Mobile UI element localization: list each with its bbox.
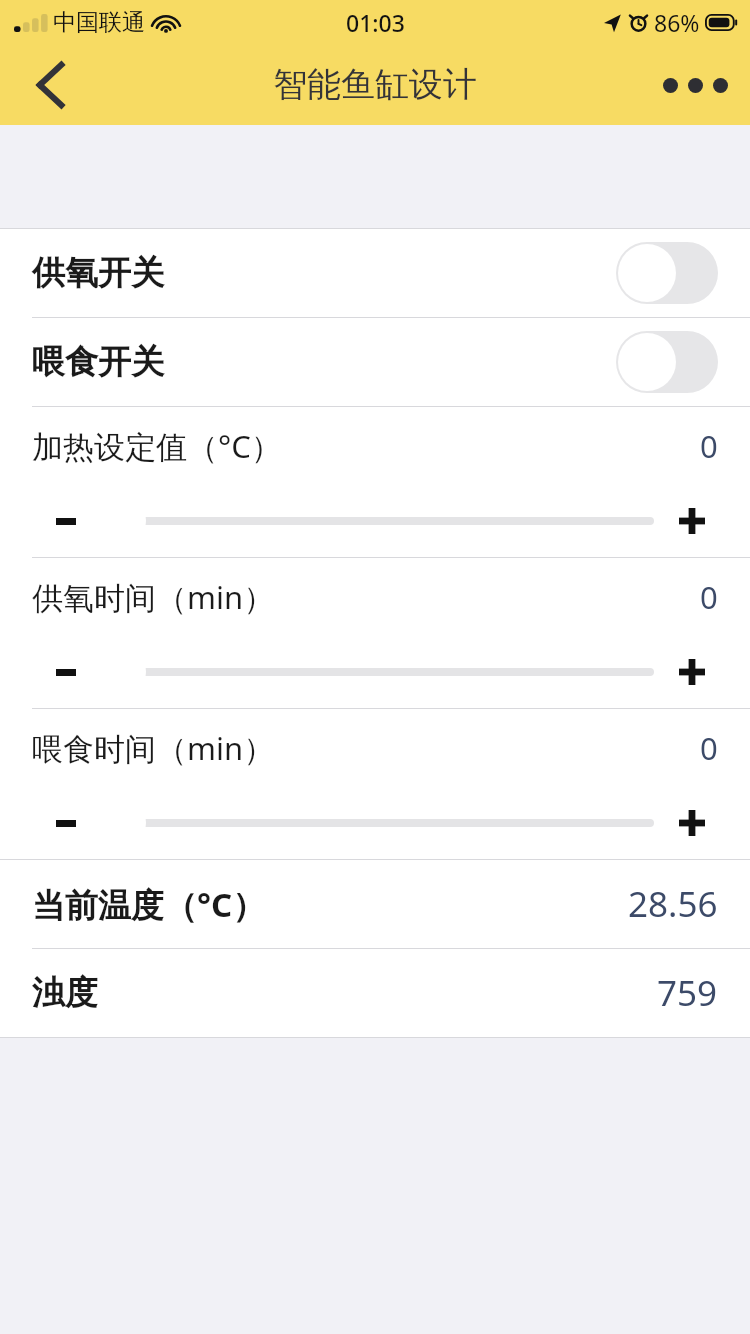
button[interactable]: 供氧时间（min） bbox=[0, 558, 750, 708]
button[interactable]: 供氧开关 bbox=[0, 229, 750, 317]
staticText: 加热设定值（°C） bbox=[32, 425, 700, 467]
staticText: 0 bbox=[700, 425, 718, 467]
staticText: 供氧开关 bbox=[32, 252, 616, 294]
staticText: 01:03 bbox=[346, 7, 405, 38]
staticText: 喂食开关 bbox=[32, 341, 616, 383]
button[interactable]: Decrease 喂食时间（min） bbox=[48, 805, 84, 841]
button[interactable]: Decrease 供氧时间（min） bbox=[48, 654, 84, 690]
button[interactable]: 喂食开关 bbox=[0, 318, 750, 406]
other: 供氧开关 bbox=[616, 242, 718, 304]
staticText: 当前温度（°C） bbox=[32, 882, 628, 927]
staticText: 喂食时间（min） bbox=[32, 727, 700, 769]
button[interactable]: 浊度 bbox=[0, 949, 750, 1037]
button[interactable]: Increase 加热设定值（°C） bbox=[672, 501, 712, 541]
button[interactable]: 喂食时间（min） bbox=[0, 709, 750, 859]
button[interactable]: 当前温度（°C） bbox=[0, 860, 750, 948]
button[interactable]: Increase 喂食时间（min） bbox=[672, 803, 712, 843]
button[interactable]: More options bbox=[644, 57, 728, 113]
other: 喂食开关 bbox=[616, 331, 718, 393]
button[interactable]: Decrease 加热设定值（°C） bbox=[48, 503, 84, 539]
staticText: 86% bbox=[654, 7, 700, 38]
staticText: 0 bbox=[700, 727, 718, 769]
staticText: 28.56 bbox=[628, 880, 718, 928]
staticText: 智能鱼缸设计 bbox=[273, 63, 477, 106]
staticText: 中国联通 bbox=[53, 8, 145, 37]
staticText: 供氧时间（min） bbox=[32, 576, 700, 618]
button[interactable]: 加热设定值（°C） bbox=[0, 407, 750, 557]
staticText: 759 bbox=[657, 969, 718, 1017]
button[interactable]: Increase 供氧时间（min） bbox=[672, 652, 712, 692]
staticText: 浊度 bbox=[32, 972, 657, 1014]
button[interactable]: Back bbox=[14, 49, 86, 121]
staticText: 0 bbox=[700, 576, 718, 618]
